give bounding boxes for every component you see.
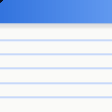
button[interactable]: Back — [0, 0, 112, 23]
